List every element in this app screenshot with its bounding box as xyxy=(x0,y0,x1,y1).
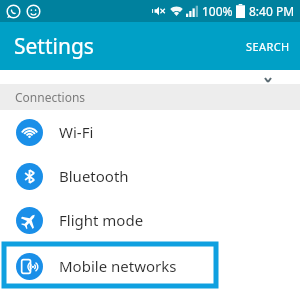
button[interactable]: Bluetooth xyxy=(0,154,300,198)
staticText: SEARCH xyxy=(246,39,290,54)
button[interactable]: SEARCH xyxy=(236,27,300,66)
staticText: 100% xyxy=(202,3,233,19)
staticText: Wi-Fi xyxy=(59,122,94,142)
staticText: Connections xyxy=(15,89,86,105)
staticText: Flight mode xyxy=(59,210,144,230)
staticText: Mobile networks xyxy=(59,256,177,276)
button[interactable]: Flight mode xyxy=(0,198,300,242)
button[interactable]: Wi-Fi xyxy=(0,110,300,154)
staticText: Bluetooth xyxy=(59,166,129,186)
staticText: 8:40 PM xyxy=(249,3,295,19)
button[interactable]: Mobile networks xyxy=(0,242,300,290)
staticText: Settings xyxy=(14,32,94,61)
